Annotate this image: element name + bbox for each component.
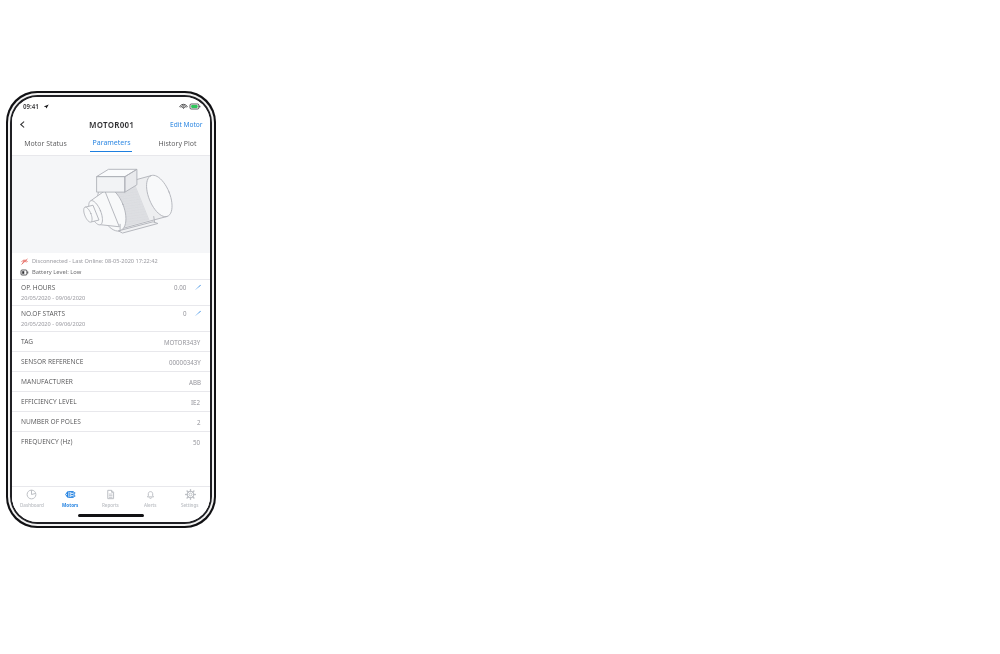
- button[interactable]: MANUFACTURER: [12, 371, 210, 391]
- staticText: OP. HOURS: [21, 283, 56, 292]
- staticText: Settings: [181, 502, 199, 508]
- button[interactable]: Back: [12, 114, 32, 134]
- button[interactable]: TAG: [12, 331, 210, 351]
- staticText: Disconnected - Last Online: 08-05-2020 1…: [32, 257, 158, 265]
- button[interactable]: Dashboard: [12, 487, 51, 509]
- staticText: Dashboard: [20, 502, 44, 508]
- staticText: TAG: [21, 337, 34, 346]
- staticText: Alerts: [144, 502, 157, 508]
- other: Edit OP. HOURS: [194, 284, 201, 291]
- staticText: Reports: [102, 502, 119, 508]
- button[interactable]: OP. HOURS: [12, 279, 210, 305]
- staticText: NO.OF STARTS: [21, 309, 66, 318]
- staticText: NUMBER OF POLES: [21, 417, 81, 426]
- button[interactable]: Reports: [90, 487, 130, 509]
- other: Edit NO.OF STARTS: [194, 310, 201, 317]
- button[interactable]: Motor Status: [12, 135, 78, 155]
- staticText: 20/05/2020 - 09/06/2020: [21, 294, 86, 302]
- button[interactable]: NO.OF STARTS: [12, 305, 210, 331]
- button[interactable]: FREQUENCY (Hz): [12, 431, 210, 451]
- staticText: IE2: [191, 398, 201, 406]
- staticText: MOTOR343Y: [164, 338, 201, 346]
- staticText: 2: [197, 418, 201, 426]
- button[interactable]: History Plot: [144, 135, 210, 155]
- staticText: 0.00: [174, 283, 187, 291]
- button[interactable]: Parameters: [78, 135, 144, 155]
- staticText: 09:41: [23, 102, 39, 110]
- staticText: SENSOR REFERENCE: [21, 357, 84, 366]
- button[interactable]: SENSOR REFERENCE: [12, 351, 210, 371]
- staticText: MANUFACTURER: [21, 377, 73, 386]
- staticText: Motors: [62, 502, 79, 508]
- staticText: Edit Motor: [170, 120, 203, 129]
- staticText: FREQUENCY (Hz): [21, 437, 73, 446]
- button[interactable]: EFFICIENCY LEVEL: [12, 391, 210, 411]
- staticText: Battery Level: Low: [32, 268, 82, 276]
- button[interactable]: Alerts: [130, 487, 170, 509]
- staticText: 50: [193, 438, 201, 446]
- button[interactable]: Motors: [51, 487, 90, 509]
- button[interactable]: Settings: [170, 487, 210, 509]
- staticText: EFFICIENCY LEVEL: [21, 397, 77, 406]
- button[interactable]: NUMBER OF POLES: [12, 411, 210, 431]
- staticText: 0: [183, 309, 187, 317]
- staticText: History Plot: [158, 139, 197, 149]
- staticText: Motor Status: [24, 139, 67, 149]
- staticText: Parameters: [92, 138, 131, 148]
- staticText: ABB: [189, 378, 201, 386]
- button[interactable]: Edit Motor: [163, 116, 210, 133]
- staticText: 00000343Y: [169, 358, 201, 366]
- staticText: 20/05/2020 - 09/06/2020: [21, 320, 86, 328]
- staticText: MOTOR001: [89, 119, 134, 130]
